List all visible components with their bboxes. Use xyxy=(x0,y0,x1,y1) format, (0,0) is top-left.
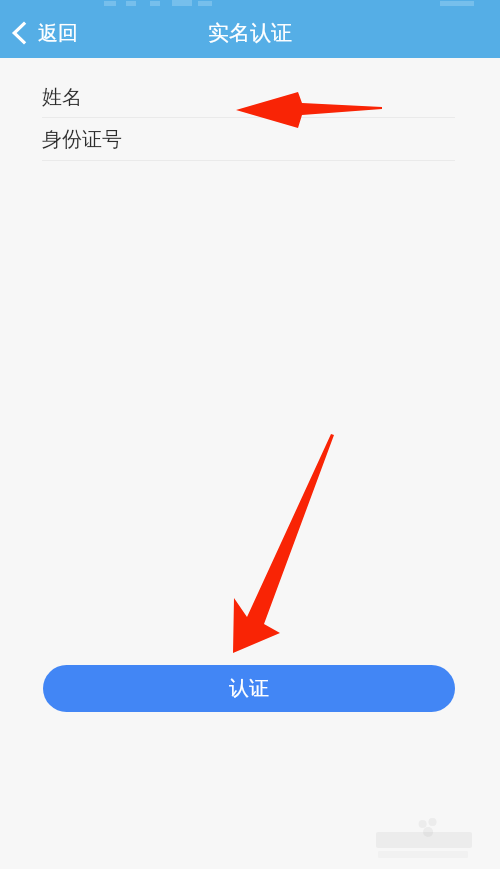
staticText: 姓名 xyxy=(42,85,82,110)
staticText: 认证 xyxy=(229,676,269,701)
staticText: 返回 xyxy=(38,21,78,46)
other: Back xyxy=(12,20,28,46)
button[interactable]: 认证 xyxy=(43,665,455,712)
staticText: 身份证号 xyxy=(42,127,122,152)
staticText: 实名认证 xyxy=(208,20,292,46)
button[interactable]: Back xyxy=(0,6,92,60)
button[interactable]: 姓名 xyxy=(0,76,500,118)
button[interactable]: 身份证号 xyxy=(0,118,500,161)
